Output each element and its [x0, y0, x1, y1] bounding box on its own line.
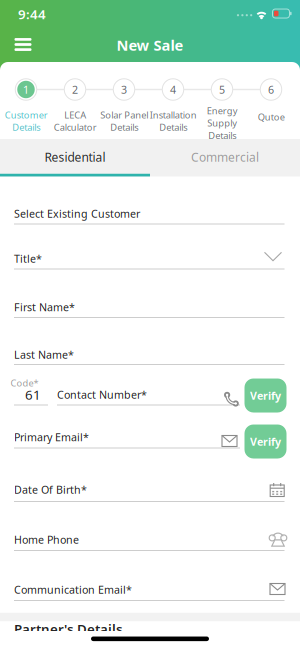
staticText: 9:44	[18, 5, 46, 23]
staticText: New Sale	[116, 35, 183, 55]
staticText: Select Existing Customer	[14, 206, 140, 221]
staticText: 5	[219, 82, 225, 97]
button[interactable]: Date Of Birth*	[0, 469, 300, 509]
button[interactable]: Commercial	[150, 139, 300, 174]
staticText: 4	[170, 82, 176, 97]
button[interactable]: Title*	[0, 238, 300, 278]
staticText: Title*	[14, 251, 42, 266]
staticText: Contact Number*	[57, 387, 147, 402]
staticText: Commercial	[191, 149, 259, 165]
staticText: Primary Email*	[14, 430, 89, 444]
button[interactable]: Primary Email*	[0, 417, 300, 457]
staticText: Energy Supply Details	[206, 104, 237, 142]
staticText: LECA Calculator	[53, 109, 96, 133]
staticText: First Name*	[14, 300, 75, 314]
button[interactable]: Verify	[244, 424, 286, 458]
staticText: Solar Panel Details	[100, 109, 148, 133]
staticText: Date Of Birth*	[14, 482, 87, 497]
button[interactable]: Contact Number*	[57, 378, 243, 410]
staticText: 61	[25, 386, 41, 403]
button[interactable]: Verify	[244, 378, 286, 412]
staticText: 1	[23, 82, 29, 97]
staticText: Qutoe	[257, 111, 284, 123]
staticText: Home Phone	[14, 532, 79, 547]
staticText: Partner's Details	[14, 620, 123, 638]
button[interactable]: Menu	[11, 34, 35, 54]
button[interactable]: Last Name*	[0, 334, 300, 374]
staticText: 3	[121, 82, 127, 97]
staticText: Communication Email*	[14, 582, 132, 597]
button[interactable]: Communication Email*	[0, 569, 300, 609]
staticText: Code*	[10, 377, 38, 389]
staticText: Residential	[44, 149, 105, 165]
staticText: Last Name*	[14, 347, 74, 362]
staticText: 6	[268, 82, 274, 97]
staticText: 2	[72, 82, 78, 97]
staticText: Verify	[250, 388, 281, 403]
button[interactable]: First Name*	[0, 287, 300, 327]
button[interactable]: Residential	[0, 139, 150, 174]
staticText: Customer Details	[4, 109, 47, 133]
button[interactable]: Select Existing Customer	[0, 193, 300, 233]
button[interactable]: Home Phone	[0, 519, 300, 559]
staticText: Installation Details	[149, 109, 196, 133]
staticText: Verify	[250, 434, 281, 449]
